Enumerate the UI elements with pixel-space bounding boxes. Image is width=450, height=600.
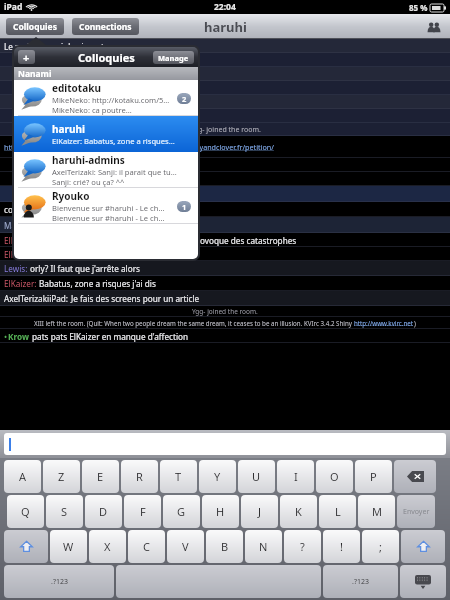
- button[interactable]: E: [82, 460, 119, 493]
- button[interactable]: C: [128, 530, 165, 563]
- staticText: Je fais des screens pour un article: [71, 293, 200, 304]
- staticText: Envoyer: [403, 507, 430, 517]
- button[interactable]: P: [355, 460, 392, 493]
- staticText: •: [4, 331, 8, 342]
- button[interactable]: S: [46, 495, 83, 528]
- staticText: http://itsuki.haruhi.fr/: [4, 142, 78, 152]
- button[interactable]: F: [124, 495, 161, 528]
- staticText: D: [99, 504, 108, 519]
- button[interactable]: H: [202, 495, 239, 528]
- staticText: ElKaizer:: [4, 249, 39, 260]
- staticText: Bienvenue sur #haruhi - Le ch…: [52, 213, 165, 223]
- button[interactable]: O: [316, 460, 353, 493]
- staticText: haruhi: [52, 122, 85, 136]
- button[interactable]: Add colloquy: [18, 50, 35, 64]
- button[interactable]: ;: [362, 530, 399, 563]
- button[interactable]: Backspace: [394, 460, 436, 493]
- staticText: V: [182, 539, 189, 554]
- staticText: F: [140, 504, 146, 519]
- staticText: Ygg- joined the room.: [190, 125, 261, 135]
- button[interactable]: X: [89, 530, 126, 563]
- button[interactable]: [4, 433, 446, 455]
- button[interactable]: T: [160, 460, 197, 493]
- button[interactable]: Q: [7, 495, 44, 528]
- staticText: http://honeyandclover.fr/petition/: [161, 142, 274, 152]
- staticText: +: [23, 50, 30, 64]
- staticText: - Pétition Chica Umino :: [78, 142, 161, 152]
- staticText: Connections: [79, 21, 132, 33]
- staticText: R: [136, 469, 143, 484]
- staticText: Lewis:: [4, 263, 30, 274]
- staticText: P: [370, 469, 377, 484]
- staticText: Ygg- joined the room.: [192, 307, 258, 316]
- button[interactable]: V: [167, 530, 204, 563]
- staticText: MikeNeko: http://kotaku.com/5…: [52, 95, 170, 105]
- button[interactable]: B: [206, 530, 243, 563]
- button[interactable]: .?123: [4, 565, 114, 598]
- button[interactable]: Ryouko: [14, 188, 198, 224]
- button[interactable]: K: [280, 495, 317, 528]
- staticText: ElKaizer:: [4, 278, 39, 289]
- staticText: 85 %: [409, 2, 428, 13]
- button[interactable]: M: [358, 495, 395, 528]
- staticText: Nanami: [18, 68, 52, 80]
- staticText: ElKaizer: Babatus, zone a risques…: [52, 136, 175, 146]
- staticText: A: [19, 469, 27, 484]
- button[interactable]: haruhi-admins: [14, 152, 198, 188]
- staticText: O: [330, 469, 339, 484]
- staticText: ElKaizer:: [4, 235, 39, 246]
- staticText: sans parler du meutre de petit chaton: [39, 249, 185, 260]
- button[interactable]: N: [245, 530, 282, 563]
- staticText: Q: [21, 504, 30, 519]
- button[interactable]: Members: [424, 17, 444, 37]
- button[interactable]: D: [85, 495, 122, 528]
- button[interactable]: Envoyer: [397, 495, 435, 528]
- button[interactable]: Shift: [4, 530, 48, 563]
- button[interactable]: Hide keyboard: [400, 565, 446, 598]
- button[interactable]: L: [319, 495, 356, 528]
- staticText: editotaku: [52, 81, 101, 95]
- staticText: K: [295, 504, 302, 519]
- button[interactable]: Z: [43, 460, 80, 493]
- staticText: W: [63, 539, 74, 554]
- button[interactable]: W: [50, 530, 87, 563]
- staticText: haruhi-admins: [52, 153, 125, 167]
- staticText: Bienvenue sur #haruhi - Le ch…: [52, 203, 165, 213]
- staticText: 22:04: [214, 1, 236, 13]
- button[interactable]: editotaku: [14, 80, 198, 116]
- button[interactable]: U: [238, 460, 275, 493]
- staticText: T: [175, 469, 182, 484]
- staticText: Colloquies: [78, 50, 135, 65]
- button[interactable]: [116, 565, 321, 598]
- staticText: X: [104, 539, 111, 554]
- staticText: comme les pakistanais: [4, 204, 91, 215]
- staticText: .?123: [352, 577, 369, 587]
- button[interactable]: Colloquies: [6, 18, 64, 35]
- staticText: N: [259, 539, 268, 554]
- staticText: E: [97, 469, 104, 484]
- button[interactable]: J: [241, 495, 278, 528]
- staticText: Colloquies: [13, 21, 57, 33]
- button[interactable]: G: [163, 495, 200, 528]
- staticText: J: [258, 504, 262, 519]
- staticText: 1: [182, 202, 187, 212]
- staticText: Le meilleur ami du ciment: [4, 41, 104, 52]
- staticText: orly? Il faut que j'arrête alors: [30, 263, 140, 274]
- button[interactable]: haruhi: [14, 116, 198, 152]
- button[interactable]: R: [121, 460, 158, 493]
- button[interactable]: Shift: [401, 530, 445, 563]
- button[interactable]: Manage: [153, 51, 194, 64]
- button[interactable]: Connections: [72, 18, 139, 35]
- staticText: ?: [300, 539, 305, 554]
- staticText: Lewis, fait gaffe, les calins a haute do…: [39, 235, 297, 246]
- button[interactable]: A: [4, 460, 41, 493]
- button[interactable]: .?123: [323, 565, 398, 598]
- staticText: Y: [214, 469, 221, 484]
- button[interactable]: I: [277, 460, 314, 493]
- button[interactable]: Y: [199, 460, 236, 493]
- button[interactable]: ?: [284, 530, 321, 563]
- staticText: Babatus, zone a risques j'ai dis: [39, 278, 156, 289]
- staticText: ManalFreddy:: [4, 220, 59, 231]
- staticText: Krow: [8, 331, 32, 342]
- button[interactable]: !: [323, 530, 360, 563]
